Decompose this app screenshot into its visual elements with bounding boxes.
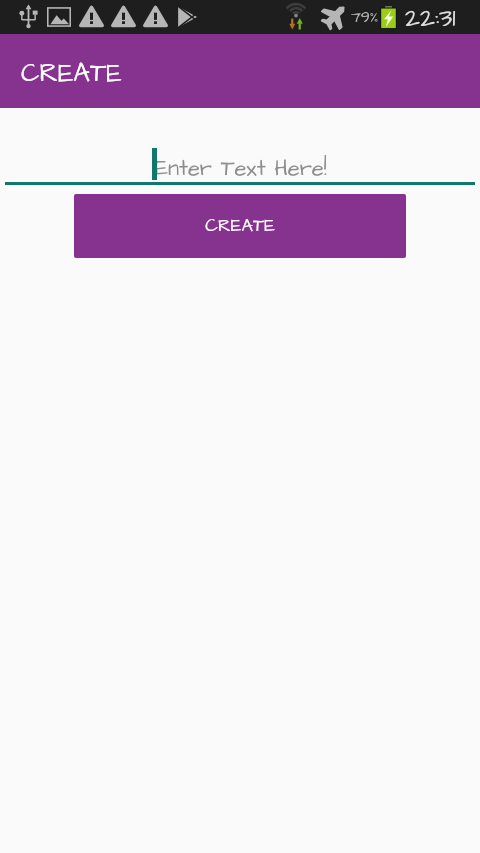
staticText: 22:31: [405, 0, 456, 34]
staticText: 79%: [351, 6, 379, 28]
button[interactable]: Enter Text Here!: [0, 108, 480, 185]
staticText: Enter Text Here!: [155, 153, 327, 184]
staticText: CREATE: [21, 55, 122, 91]
button[interactable]: CREATE: [74, 194, 406, 258]
staticText: CREATE: [205, 213, 275, 238]
